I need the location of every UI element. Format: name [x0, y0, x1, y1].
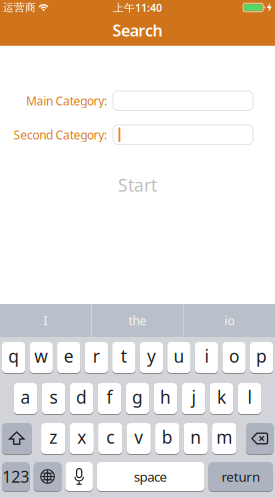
button[interactable]: c: [98, 422, 122, 454]
staticText: t: [121, 344, 127, 367]
button[interactable]: I: [0, 304, 91, 337]
staticText: l: [247, 385, 251, 408]
button[interactable]: t: [112, 341, 135, 373]
staticText: n: [190, 425, 201, 448]
staticText: r: [93, 344, 100, 367]
button[interactable]: v: [127, 422, 151, 454]
staticText: io: [225, 312, 235, 328]
button[interactable]: b: [155, 422, 179, 454]
staticText: f: [106, 385, 112, 408]
button[interactable]: return: [208, 461, 273, 491]
staticText: h: [160, 385, 171, 408]
staticText: w: [34, 344, 48, 367]
staticText: 上午11:40: [113, 0, 162, 15]
staticText: i: [204, 344, 208, 367]
button[interactable]: Shift: [2, 422, 32, 454]
staticText: return: [221, 468, 260, 485]
staticText: a: [20, 385, 30, 408]
button[interactable]: j: [182, 382, 205, 414]
staticText: s: [49, 385, 57, 408]
staticText: the: [128, 312, 146, 328]
button[interactable]: space: [97, 461, 204, 491]
staticText: I: [43, 312, 47, 328]
staticText: Second Category:: [13, 127, 107, 143]
staticText: q: [8, 344, 19, 367]
button[interactable]: u: [167, 341, 191, 373]
staticText: 运营商: [3, 1, 36, 14]
staticText: k: [217, 385, 226, 408]
staticText: v: [134, 425, 143, 448]
staticText: z: [49, 425, 57, 448]
staticText: p: [256, 344, 267, 367]
button[interactable]: d: [70, 382, 93, 414]
button[interactable]: Main Category text field: [113, 91, 253, 110]
staticText: Start: [118, 173, 157, 196]
button[interactable]: p: [250, 341, 273, 373]
button[interactable]: 123: [2, 461, 30, 491]
staticText: c: [106, 425, 114, 448]
button[interactable]: m: [212, 422, 236, 454]
button[interactable]: e: [57, 341, 80, 373]
button[interactable]: k: [210, 382, 233, 414]
button[interactable]: Second Category text field: [113, 125, 253, 144]
staticText: 123: [2, 466, 29, 487]
button[interactable]: Start: [107, 175, 167, 195]
button[interactable]: f: [98, 382, 121, 414]
staticText: Main Category:: [26, 93, 107, 109]
button[interactable]: q: [2, 341, 25, 373]
staticText: x: [77, 425, 86, 448]
button[interactable]: g: [126, 382, 149, 414]
button[interactable]: w: [30, 341, 53, 373]
staticText: e: [64, 344, 74, 367]
button[interactable]: Delete: [246, 422, 273, 454]
button[interactable]: o: [222, 341, 246, 373]
staticText: g: [132, 385, 143, 408]
button[interactable]: h: [154, 382, 177, 414]
button[interactable]: l: [238, 382, 261, 414]
staticText: d: [76, 385, 87, 408]
button[interactable]: s: [42, 382, 65, 414]
button[interactable]: r: [85, 341, 108, 373]
staticText: Search: [112, 20, 162, 41]
staticText: b: [162, 425, 173, 448]
staticText: y: [147, 344, 156, 367]
button[interactable]: n: [184, 422, 208, 454]
button[interactable]: Dictate: [65, 461, 93, 491]
staticText: space: [134, 468, 168, 485]
button[interactable]: the: [92, 304, 183, 337]
staticText: m: [216, 425, 232, 448]
button[interactable]: a: [14, 382, 37, 414]
button[interactable]: x: [70, 422, 94, 454]
button[interactable]: io: [184, 304, 275, 337]
staticText: u: [173, 344, 184, 367]
staticText: j: [191, 385, 195, 408]
button[interactable]: y: [140, 341, 163, 373]
staticText: o: [229, 344, 239, 367]
button[interactable]: Next keyboard: [34, 461, 61, 491]
button[interactable]: z: [41, 422, 65, 454]
button[interactable]: i: [195, 341, 218, 373]
